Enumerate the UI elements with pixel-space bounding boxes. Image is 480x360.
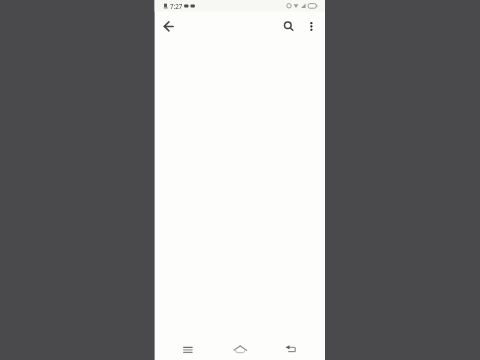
staticText: 7:27 [170,2,183,10]
button[interactable] [301,14,322,39]
button[interactable] [223,337,257,360]
button[interactable] [157,14,179,39]
button[interactable] [171,337,205,360]
button[interactable] [277,14,298,39]
button[interactable] [274,337,308,360]
